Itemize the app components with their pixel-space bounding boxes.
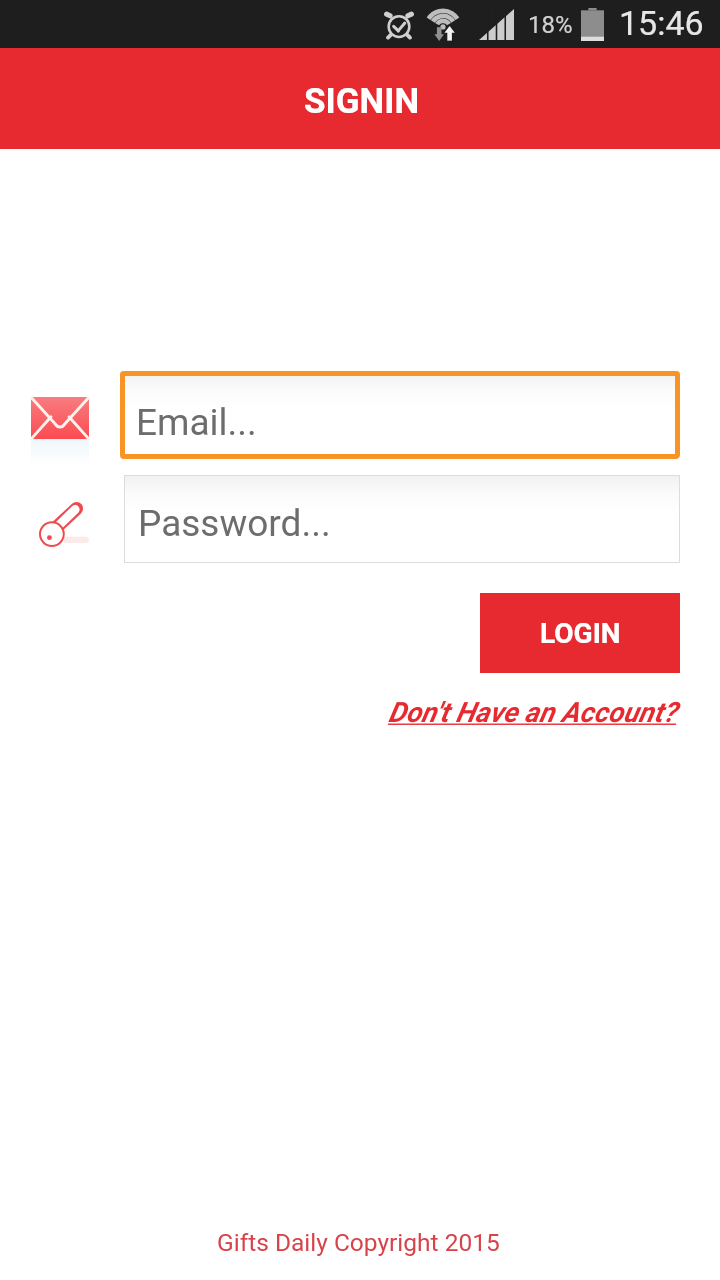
other: Battery 18 percent	[581, 8, 604, 41]
staticText: Don't Have an Account?	[388, 696, 677, 729]
staticText: Password...	[138, 502, 331, 545]
other: Email	[31, 397, 89, 459]
other: Password	[40, 502, 84, 552]
button[interactable]: Don't Have an Account?	[383, 691, 682, 734]
staticText: Gifts Daily Copyright 2015	[217, 1228, 500, 1257]
staticText: 18%	[528, 11, 573, 39]
staticText: LOGIN	[540, 617, 621, 650]
other: Mobile signal	[479, 9, 514, 40]
button[interactable]: Password...	[124, 475, 680, 563]
staticText: SIGNIN	[304, 81, 420, 122]
other: Wi-Fi connected	[423, 8, 463, 40]
button[interactable]: LOGIN	[480, 593, 680, 673]
button[interactable]: Email...	[120, 371, 680, 459]
other: Alarm set	[384, 8, 414, 40]
staticText: Email...	[136, 401, 257, 444]
staticText: 15:46	[619, 3, 704, 43]
